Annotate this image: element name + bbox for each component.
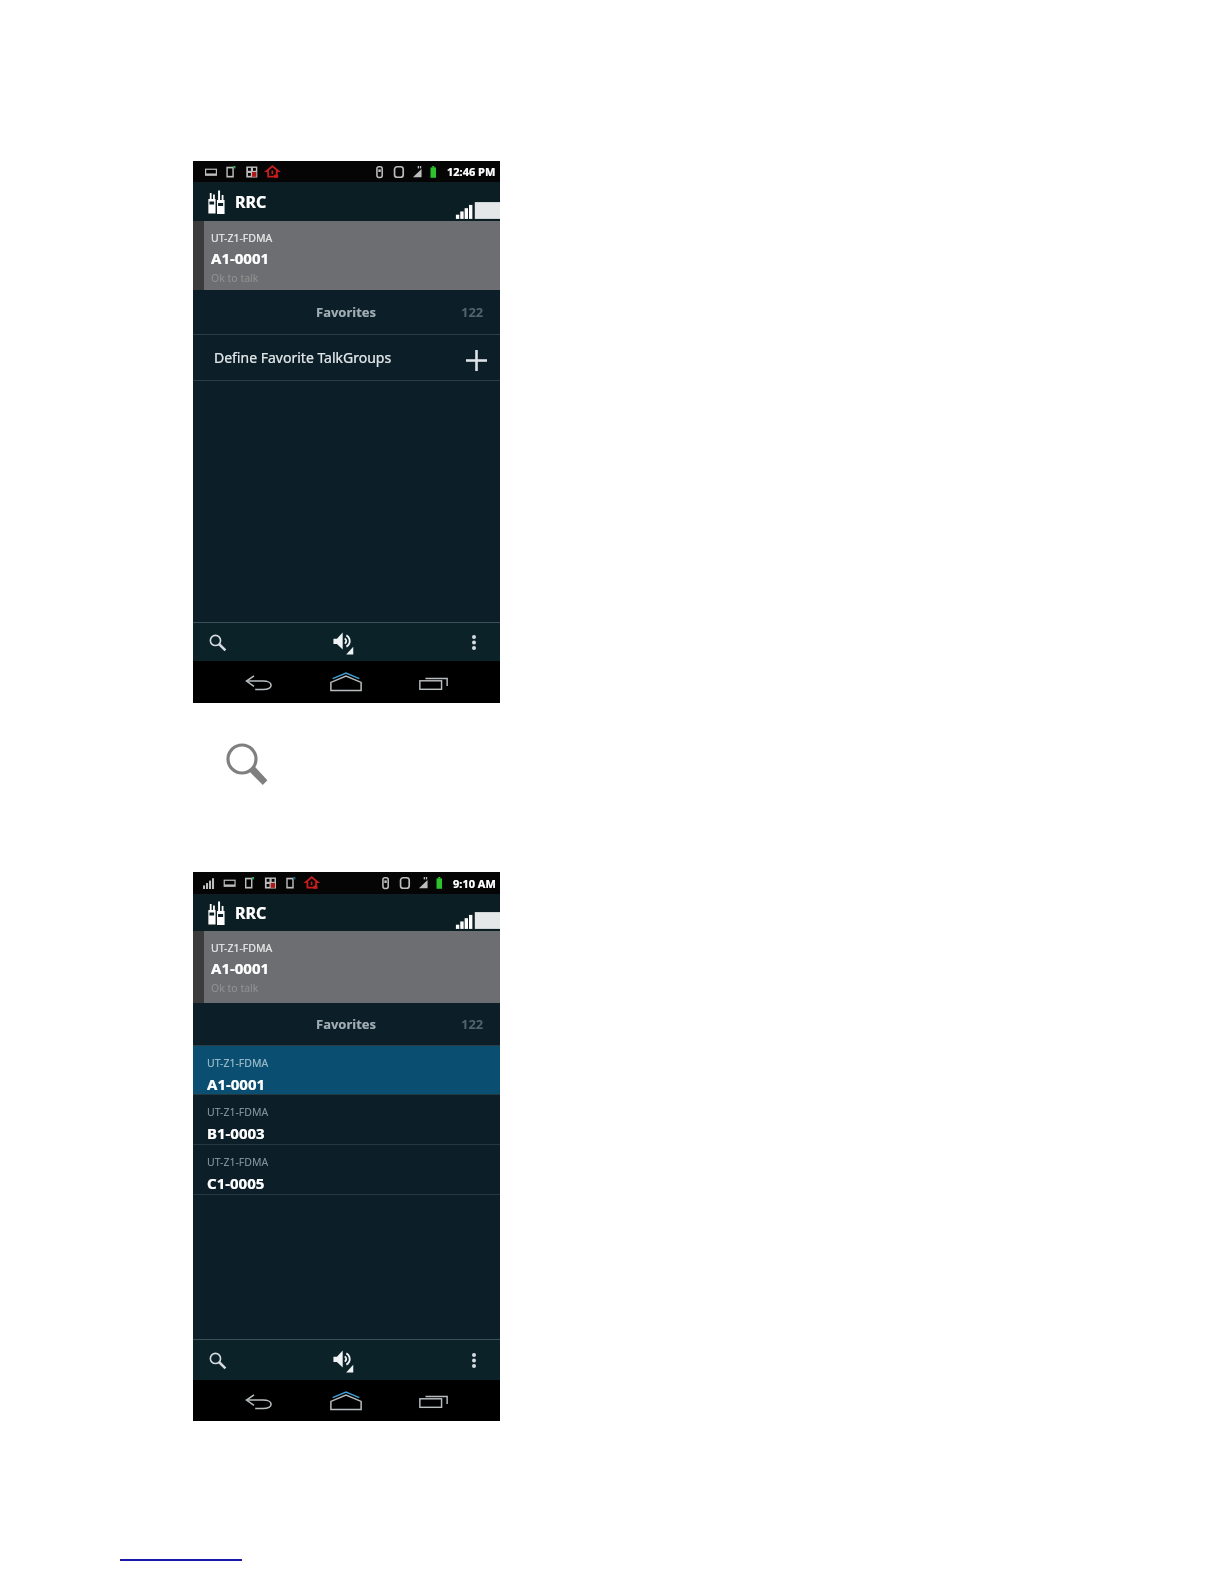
staticText: 122 bbox=[461, 303, 484, 321]
staticText: RRC bbox=[235, 902, 267, 924]
button[interactable]: Search bbox=[193, 623, 241, 661]
button[interactable]: Home bbox=[296, 661, 398, 703]
staticText: 12:46 PM bbox=[447, 164, 496, 179]
button[interactable]: More options bbox=[447, 623, 500, 661]
button[interactable]: Recents bbox=[398, 661, 500, 703]
button[interactable]: Back bbox=[193, 661, 296, 703]
staticText: UT-Z1-FDMA bbox=[207, 1056, 269, 1070]
button[interactable]: Volume bbox=[316, 623, 372, 661]
button[interactable]: Search bbox=[193, 1340, 241, 1380]
staticText: Favorites bbox=[316, 303, 377, 321]
staticText: A1-0001 bbox=[207, 1074, 266, 1094]
staticText: A1-0001 bbox=[211, 958, 270, 978]
staticText: Ok to talk bbox=[211, 271, 259, 285]
button[interactable]: Volume bbox=[316, 1340, 372, 1380]
button[interactable]: UT-Z1-FDMA bbox=[193, 221, 500, 290]
staticText: A1-0001 bbox=[211, 248, 270, 268]
button[interactable]: Home bbox=[296, 1380, 398, 1421]
staticText: C1-0005 bbox=[207, 1173, 265, 1193]
staticText: 9:10 AM bbox=[453, 876, 496, 891]
button[interactable]: Back bbox=[193, 1380, 296, 1421]
button[interactable]: More options bbox=[447, 1340, 500, 1380]
staticText: B1-0003 bbox=[207, 1123, 265, 1143]
staticText: UT-Z1-FDMA bbox=[211, 941, 273, 955]
button[interactable]: UT-Z1-FDMA bbox=[193, 1145, 500, 1194]
staticText: RRC bbox=[235, 191, 267, 213]
staticText: UT-Z1-FDMA bbox=[207, 1155, 269, 1169]
button[interactable]: UT-Z1-FDMA bbox=[193, 1046, 500, 1094]
staticText: Define Favorite TalkGroups bbox=[214, 348, 392, 367]
button[interactable]: UT-Z1-FDMA bbox=[193, 931, 500, 1003]
staticText: 122 bbox=[461, 1015, 484, 1033]
staticText: UT-Z1-FDMA bbox=[207, 1105, 269, 1119]
button[interactable]: Recents bbox=[398, 1380, 500, 1421]
staticText: Ok to talk bbox=[211, 981, 259, 995]
button[interactable]: UT-Z1-FDMA bbox=[193, 1095, 500, 1144]
staticText: Favorites bbox=[316, 1015, 377, 1033]
button[interactable]: Search bbox=[226, 744, 272, 784]
staticText: UT-Z1-FDMA bbox=[211, 231, 273, 245]
button[interactable]: Define Favorite TalkGroups bbox=[193, 335, 500, 380]
